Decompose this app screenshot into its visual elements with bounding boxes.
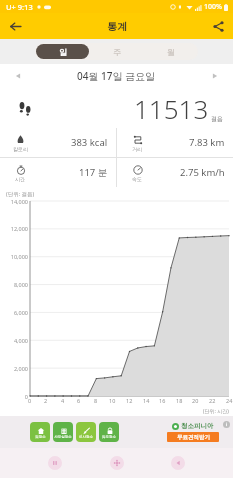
button[interactable]: 월	[145, 44, 197, 59]
button[interactable]: 주	[91, 44, 143, 59]
staticText: 집청소	[35, 435, 46, 439]
staticText: 12,000	[10, 225, 28, 232]
staticText: 18	[176, 397, 183, 404]
staticText: 2	[44, 397, 48, 404]
button[interactable]: 입주청소	[99, 422, 119, 442]
button[interactable]: Back	[171, 456, 185, 470]
staticText: (단위: 시간)	[203, 408, 229, 415]
staticText: 14,000	[10, 198, 28, 205]
button[interactable]: Recents	[48, 456, 62, 470]
button[interactable]: Info	[222, 420, 230, 428]
staticText: U+ 9:13	[6, 2, 33, 12]
staticText: 입주청소	[102, 435, 116, 439]
staticText: 7.83 km	[189, 136, 225, 149]
button[interactable]: 이사청소	[76, 422, 96, 442]
staticText: 16	[159, 397, 166, 404]
button[interactable]: Share	[207, 15, 229, 37]
staticText: 걸음	[211, 115, 223, 123]
staticText: 14	[143, 397, 150, 404]
staticText: 10,000	[10, 253, 28, 260]
staticText: 2,000	[13, 365, 28, 372]
staticText: 24	[226, 397, 233, 404]
staticText: 6	[77, 397, 81, 404]
staticText: 2.75 km/h	[180, 166, 225, 179]
staticText: 4	[61, 397, 65, 404]
staticText: 월	[167, 47, 175, 57]
staticText: 11513	[134, 91, 209, 126]
staticText: 20	[192, 397, 199, 404]
staticText: 22	[209, 397, 216, 404]
staticText: 8	[94, 397, 98, 404]
staticText: 383 kcal	[71, 136, 108, 149]
staticText: 6,000	[13, 309, 28, 316]
button[interactable]: 일	[36, 44, 89, 59]
staticText: 칼로리	[13, 146, 28, 152]
button[interactable]: Home	[110, 456, 124, 470]
staticText: 시간	[15, 176, 25, 182]
staticText: 무료견적받기	[177, 434, 210, 441]
staticText: 청소피니아	[181, 422, 214, 430]
button[interactable]: Previous day	[10, 68, 26, 84]
staticText: 주	[113, 47, 121, 57]
staticText: 속도	[132, 176, 142, 182]
button[interactable]: Back	[4, 15, 26, 37]
staticText: 8,000	[13, 281, 28, 288]
button[interactable]: 칼로리	[0, 128, 116, 157]
staticText: 사무실청소	[54, 435, 72, 439]
staticText: 12	[126, 397, 133, 404]
staticText: 04월 17일 금요일	[77, 69, 156, 83]
staticText: 통계	[107, 20, 127, 33]
staticText: 일	[59, 47, 67, 57]
staticText: 10	[109, 397, 116, 404]
button[interactable]: 집청소	[30, 422, 50, 442]
staticText: 4,000	[13, 337, 28, 344]
button[interactable]: Next day	[207, 68, 223, 84]
staticText: (단위: 걸음)	[6, 190, 35, 198]
staticText: 거리	[132, 146, 142, 152]
staticText: 100%	[204, 2, 222, 12]
button[interactable]: 거리	[117, 128, 233, 157]
button[interactable]: 시간	[0, 158, 116, 187]
staticText: 이사청소	[79, 435, 93, 439]
staticText: 0	[24, 393, 28, 400]
button[interactable]: 속도	[117, 158, 233, 187]
button[interactable]: 무료견적받기	[167, 432, 219, 442]
staticText: 117 분	[79, 166, 108, 179]
button[interactable]: 사무실청소	[53, 422, 73, 442]
staticText: 0	[28, 397, 32, 404]
